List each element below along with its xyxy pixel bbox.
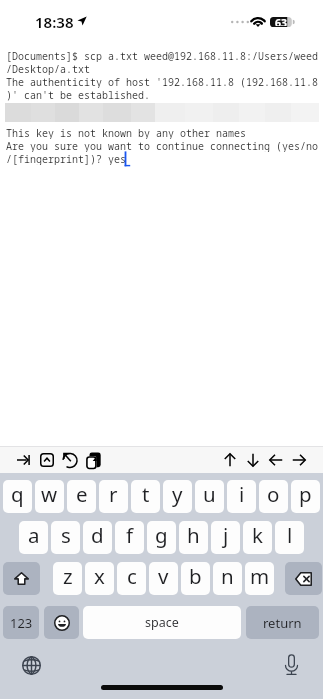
button[interactable]: k [243, 521, 272, 554]
button[interactable]: e [67, 480, 96, 513]
button[interactable]: z [53, 562, 82, 595]
button[interactable]: Emoji [44, 606, 79, 639]
staticText: r [109, 480, 118, 508]
button[interactable]: x [85, 562, 114, 595]
button[interactable]: space [83, 606, 241, 639]
staticText: s [61, 521, 71, 549]
staticText: i [239, 480, 245, 508]
button[interactable]: y [163, 480, 192, 513]
button[interactable]: Arrow left [264, 447, 287, 473]
staticText: f [126, 521, 134, 549]
button[interactable]: Undo [58, 447, 81, 473]
button[interactable]: Paste [81, 447, 104, 473]
button[interactable]: i [227, 480, 256, 513]
staticText: /[fingerprint])? yes [6, 152, 126, 165]
button[interactable]: Arrow down [241, 447, 264, 473]
staticText: The authenticity of host '192.168.11.8 (… [6, 75, 318, 88]
button[interactable]: q [3, 480, 32, 513]
staticText: j [223, 521, 229, 549]
staticText: w [41, 480, 58, 508]
staticText: m [250, 562, 270, 590]
staticText: u [203, 480, 216, 508]
staticText: 18:38 [35, 12, 74, 32]
button[interactable]: Tab [12, 447, 35, 473]
button[interactable]: f [115, 521, 144, 554]
staticText: 123 [10, 614, 33, 632]
staticText: z [63, 562, 73, 590]
button[interactable]: v [149, 562, 178, 595]
button[interactable]: w [35, 480, 64, 513]
staticText: l [287, 521, 293, 549]
button[interactable]: l [275, 521, 304, 554]
staticText: [Documents]$ scp a.txt weed@192.168.11.8… [6, 49, 318, 62]
staticText: a [28, 521, 40, 549]
staticText: d [91, 521, 104, 549]
staticText: c [127, 562, 137, 590]
button[interactable]: return [246, 606, 319, 639]
staticText: q [11, 480, 24, 508]
staticText: o [267, 480, 280, 508]
button[interactable]: Backspace [285, 562, 322, 595]
staticText: This key is not known by any other names [6, 126, 246, 139]
button[interactable]: t [131, 480, 160, 513]
button[interactable]: d [83, 521, 112, 554]
staticText: n [221, 562, 234, 590]
button[interactable]: Switch keyboard [18, 652, 44, 678]
button[interactable]: m [245, 562, 274, 595]
staticText: p [299, 480, 312, 508]
button[interactable]: c [117, 562, 146, 595]
staticText: space [145, 614, 179, 631]
button[interactable]: Dictation [278, 652, 304, 678]
button[interactable]: 123 [3, 606, 39, 639]
button[interactable]: n [213, 562, 242, 595]
staticText: x [94, 562, 105, 590]
button[interactable]: b [181, 562, 210, 595]
button[interactable]: Control [35, 447, 58, 473]
staticText: /Desktop/a.txt [6, 62, 90, 75]
staticText: y [172, 480, 183, 508]
staticText: )' can't be established. [6, 88, 150, 101]
button[interactable]: h [179, 521, 208, 554]
button[interactable]: o [259, 480, 288, 513]
staticText: g [155, 521, 168, 549]
staticText: v [158, 562, 169, 590]
button[interactable]: r [99, 480, 128, 513]
button[interactable]: j [211, 521, 240, 554]
button[interactable]: u [195, 480, 224, 513]
button[interactable]: Shift [3, 562, 40, 595]
staticText: h [187, 521, 200, 549]
button[interactable]: s [51, 521, 80, 554]
staticText: Are you sure you want to continue connec… [6, 139, 318, 152]
button[interactable]: g [147, 521, 176, 554]
button[interactable]: p [291, 480, 320, 513]
button[interactable]: Arrow right [287, 447, 310, 473]
staticText: k [252, 521, 263, 549]
staticText: b [189, 562, 202, 590]
staticText: e [76, 480, 88, 508]
button[interactable]: a [19, 521, 48, 554]
staticText: t [142, 480, 150, 508]
staticText: 63 [275, 16, 288, 26]
staticText: return [263, 614, 302, 632]
button[interactable]: Arrow up [218, 447, 241, 473]
